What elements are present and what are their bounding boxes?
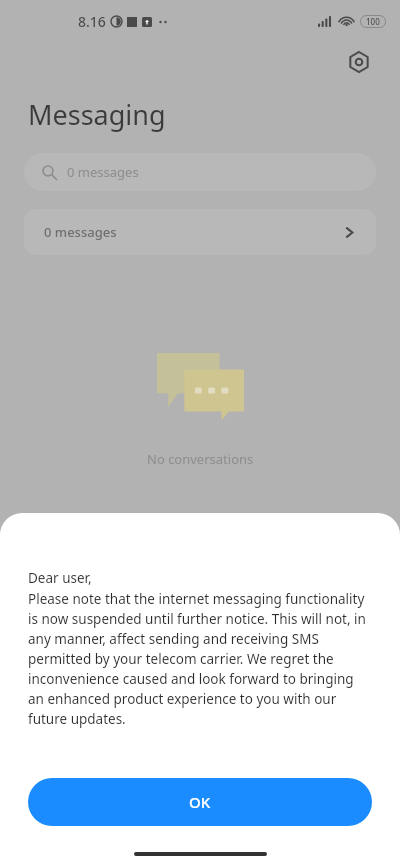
button[interactable]: 0 messages (24, 209, 376, 255)
staticText: No conversations (147, 450, 254, 468)
staticText: Messaging (28, 96, 166, 133)
staticText: 0 messages (44, 223, 117, 241)
staticText: 0 messages (67, 163, 139, 181)
staticText: Dear user, Please note that the internet… (28, 569, 372, 728)
staticText: OK (189, 792, 211, 812)
staticText: 100 (366, 16, 380, 27)
button[interactable]: OK (28, 778, 372, 826)
button[interactable]: Settings (342, 45, 376, 79)
staticText: 8.16 (78, 12, 106, 31)
button[interactable]: 0 messages (24, 153, 376, 191)
